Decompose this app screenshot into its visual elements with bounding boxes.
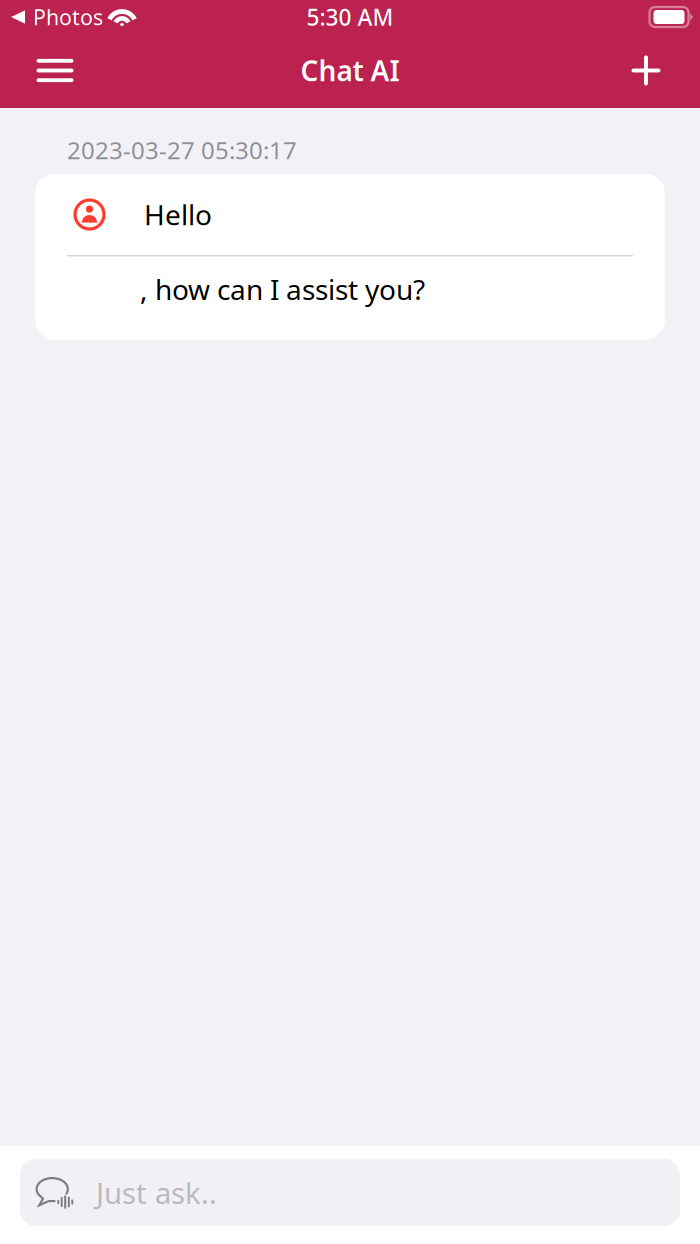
- staticText: , how can I assist you?: [140, 271, 425, 308]
- button[interactable]: New chat: [615, 38, 677, 102]
- staticText: Hello: [144, 196, 212, 233]
- staticText: 2023-03-27 05:30:17: [67, 134, 297, 166]
- staticText: Just ask..: [96, 1173, 217, 1212]
- button[interactable]: Menu: [24, 38, 86, 102]
- button[interactable]: , how can I assist you?: [35, 256, 665, 340]
- button[interactable]: Hello: [35, 174, 665, 255]
- staticText: Photos: [33, 3, 103, 31]
- staticText: 5:30 AM: [306, 2, 393, 32]
- staticText: Chat AI: [300, 52, 399, 89]
- button[interactable]: Just ask..: [20, 1159, 680, 1226]
